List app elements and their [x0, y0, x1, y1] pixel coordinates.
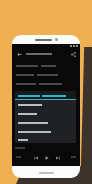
button[interactable]: Previous track: [32, 154, 39, 161]
button[interactable]: [15, 109, 76, 118]
button[interactable]: [15, 118, 76, 127]
button[interactable]: [15, 136, 76, 143]
button[interactable]: [15, 91, 76, 100]
button[interactable]: [15, 100, 76, 109]
button[interactable]: [15, 127, 76, 136]
button[interactable]: Share: [69, 50, 77, 58]
button[interactable]: Play: [43, 154, 50, 161]
button[interactable]: Back: [15, 50, 23, 58]
button[interactable]: Next track: [54, 154, 61, 161]
